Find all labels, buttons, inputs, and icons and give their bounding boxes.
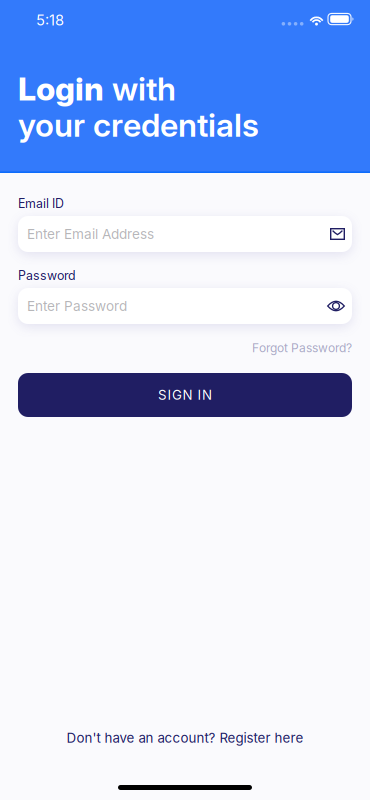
button[interactable]: SIGN IN <box>18 373 352 417</box>
staticText: Email ID <box>18 196 64 211</box>
button[interactable]: Forgot Password? <box>18 339 352 357</box>
staticText: SIGN IN <box>158 387 212 403</box>
staticText: Enter Email Address <box>27 226 154 242</box>
staticText: Password <box>18 268 76 283</box>
staticText: Forgot Password? <box>252 341 352 355</box>
staticText: Enter Password <box>27 298 127 314</box>
staticText: Don't have an account? Register here <box>66 730 303 746</box>
staticText: Login with <box>18 70 176 108</box>
staticText: 5:18 <box>36 11 64 29</box>
staticText: your credentials <box>18 106 259 144</box>
button[interactable]: Don't have an account? Register here <box>18 728 352 748</box>
